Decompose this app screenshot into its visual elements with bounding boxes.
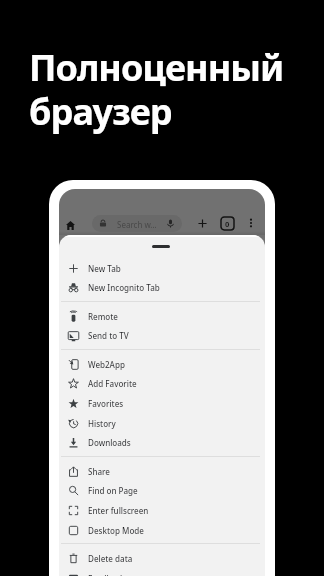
staticText: Remote (88, 311, 118, 322)
button[interactable]: Find on Page (59, 480, 265, 500)
button[interactable]: Delete data (59, 548, 265, 568)
staticText: Downloads (88, 437, 131, 448)
staticText: Delete data (88, 553, 133, 564)
staticText: Find on Page (88, 485, 138, 496)
staticText: History (88, 418, 116, 429)
staticText: Enter fullscreen (88, 505, 149, 516)
staticText: New Incognito Tab (88, 282, 160, 293)
staticText: Feedback (88, 573, 125, 576)
button[interactable]: Open tabs (219, 215, 235, 231)
button[interactable]: Feedback (59, 568, 265, 576)
staticText: Send to TV (88, 330, 129, 341)
staticText: Web2App (88, 359, 125, 370)
button[interactable]: Desktop Mode (59, 520, 265, 540)
button[interactable]: Send to TV (59, 325, 265, 345)
staticText: 0 (225, 219, 230, 229)
button[interactable]: New tab (194, 215, 210, 231)
button[interactable]: More options (243, 215, 259, 231)
button[interactable]: New Tab (59, 258, 265, 278)
button[interactable]: Downloads (59, 432, 265, 452)
button[interactable]: Share (59, 461, 265, 481)
button[interactable]: Enter fullscreen (59, 500, 265, 520)
button[interactable]: Search or type URL (92, 215, 182, 232)
button[interactable]: New Incognito Tab (59, 277, 265, 297)
staticText: Search w… (117, 219, 157, 230)
staticText: Share (88, 466, 110, 477)
staticText: Desktop Mode (88, 525, 144, 536)
staticText: Add Favorite (88, 378, 137, 389)
staticText: Полноценный браузер (29, 43, 284, 135)
button[interactable]: History (59, 413, 265, 433)
button[interactable]: Add Favorite (59, 373, 265, 393)
button[interactable]: Web2App (59, 354, 265, 374)
button[interactable]: Favorites (59, 393, 265, 413)
button[interactable]: Remote (59, 306, 265, 326)
button[interactable]: Home (62, 217, 78, 233)
staticText: Favorites (88, 398, 124, 409)
staticText: New Tab (88, 263, 121, 274)
